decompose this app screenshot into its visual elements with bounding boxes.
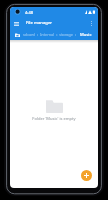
button[interactable]: Menu — [11, 18, 22, 29]
staticText: Music — [80, 32, 92, 38]
staticText: File manager — [26, 20, 53, 26]
staticText: sdcard › Internal › storage › — [23, 32, 77, 37]
button[interactable]: More options — [86, 18, 97, 29]
button[interactable]: Add — [81, 170, 92, 181]
staticText: 4:48 — [25, 10, 33, 15]
staticText: Folder 'Music' is empty — [32, 116, 76, 122]
button[interactable]: Storage root — [15, 33, 20, 37]
